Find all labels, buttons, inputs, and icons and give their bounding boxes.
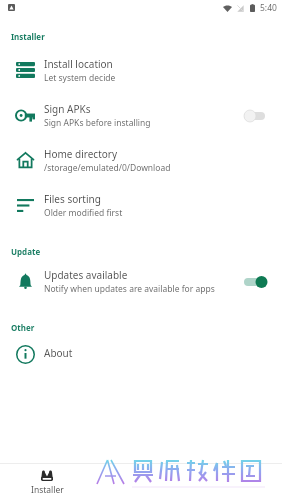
staticText: Update — [11, 246, 41, 257]
button[interactable]: Toggle off — [238, 103, 266, 129]
button[interactable]: Files sorting — [0, 183, 282, 228]
staticText: 5:40 — [260, 2, 277, 14]
staticText: Install location — [44, 57, 113, 71]
button[interactable]: Install location — [0, 48, 282, 93]
button[interactable]: Installer — [0, 464, 94, 500]
staticText: Installer — [11, 31, 45, 42]
button[interactable]: Sign APKs — [0, 93, 282, 138]
staticText: Updates available — [44, 268, 128, 282]
button[interactable]: Home directory — [0, 138, 282, 183]
staticText: Let system decide — [44, 72, 116, 84]
button[interactable]: About — [0, 335, 282, 371]
staticText: Home directory — [44, 147, 118, 161]
staticText: Notify when updates are available for ap… — [44, 283, 215, 295]
staticText: Installer — [31, 484, 64, 496]
button[interactable]: Toggle on — [238, 269, 266, 295]
staticText: About — [44, 346, 73, 360]
staticText: Files sorting — [44, 192, 101, 206]
staticText: /storage/emulated/0/Download — [44, 162, 171, 174]
button[interactable]: Updates available — [0, 259, 282, 304]
staticText: Older modified first — [44, 207, 123, 219]
staticText: Sign APKs — [44, 102, 91, 116]
staticText: Sign APKs before installing — [44, 117, 151, 129]
staticText: Other — [11, 322, 35, 333]
